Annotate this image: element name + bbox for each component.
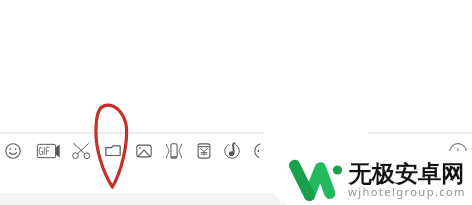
button[interactable]: More: [248, 137, 276, 165]
button[interactable]: Scissors: [67, 137, 95, 165]
staticText: 无极安卓网: [348, 160, 464, 189]
button[interactable]: Music: [218, 137, 246, 165]
button[interactable]: Shake: [160, 137, 188, 165]
button[interactable]: Folder: [99, 137, 127, 165]
button[interactable]: Red packet: [190, 137, 218, 165]
button[interactable]: History: [444, 138, 472, 166]
button[interactable]: Emoji: [0, 137, 27, 165]
button[interactable]: Image: [130, 137, 158, 165]
button[interactable]: GIF: [33, 137, 61, 165]
staticText: wjhotelgroup.com: [348, 184, 466, 199]
